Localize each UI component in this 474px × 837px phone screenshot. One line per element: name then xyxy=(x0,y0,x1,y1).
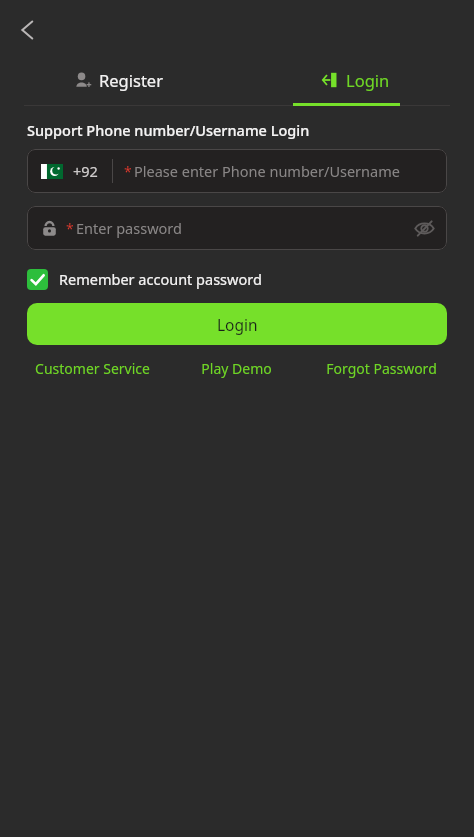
button[interactable]: Customer Service xyxy=(20,355,164,381)
button[interactable]: Login xyxy=(27,303,447,345)
button[interactable]: Remember account password xyxy=(27,263,262,295)
button[interactable]: Show password xyxy=(405,209,443,247)
button[interactable]: Forgot Password xyxy=(309,355,454,381)
staticText: Register xyxy=(99,69,163,91)
staticText: Customer Service xyxy=(35,359,150,378)
staticText: Remember account password xyxy=(59,269,262,289)
staticText: Login xyxy=(346,69,390,91)
staticText: Play Demo xyxy=(201,359,272,378)
button[interactable]: +92 xyxy=(27,149,447,193)
staticText: Forgot Password xyxy=(326,359,437,378)
staticText: * xyxy=(124,162,132,181)
button[interactable]: Login xyxy=(237,60,474,100)
button[interactable]: Back xyxy=(8,12,44,48)
button[interactable]: Play Demo xyxy=(164,355,309,381)
button[interactable]: * xyxy=(27,206,447,250)
button[interactable]: Register xyxy=(0,60,237,100)
staticText: * xyxy=(66,219,74,238)
staticText: Login xyxy=(217,314,258,335)
staticText: Support Phone number/Username Login xyxy=(27,120,310,140)
staticText: Enter password xyxy=(76,218,182,238)
staticText: +92 xyxy=(73,161,98,181)
staticText: Please enter Phone number/Username xyxy=(134,161,400,181)
